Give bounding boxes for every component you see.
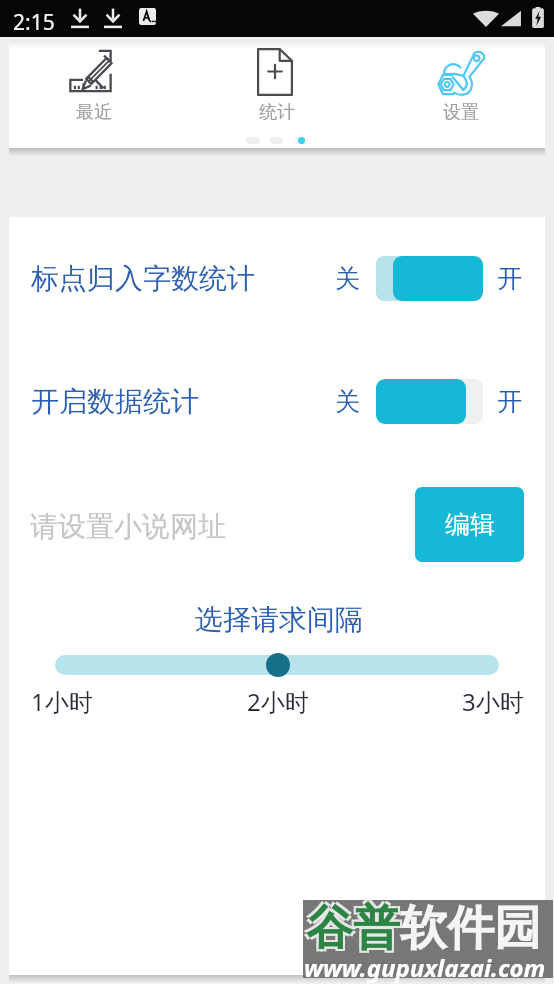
button[interactable]: 最近	[9, 40, 187, 148]
button[interactable]: 统计	[195, 40, 373, 148]
button[interactable]: 编辑	[415, 487, 524, 562]
button[interactable]: 开启数据统计	[9, 374, 545, 428]
staticText: 谷普	[308, 897, 402, 956]
staticText: 开启数据统计	[31, 384, 199, 419]
button[interactable]: On	[376, 256, 483, 301]
staticText: 编辑	[445, 509, 495, 540]
staticText: 开	[497, 386, 522, 417]
staticText: www.gupuxlazai.com	[304, 951, 546, 984]
button[interactable]: 设置	[379, 40, 554, 148]
staticText: 设置	[442, 101, 480, 124]
staticText: 统计	[258, 101, 296, 124]
staticText: 开	[497, 263, 522, 294]
staticText: 2小时	[247, 685, 309, 718]
button[interactable]: Off	[376, 379, 483, 424]
staticText: 标点归入字数统计	[31, 261, 255, 296]
staticText: 谷普	[306, 899, 400, 958]
staticText: 1小时	[31, 685, 93, 718]
staticText: 选择请求间隔	[195, 602, 363, 637]
button[interactable]: 标点归入字数统计	[9, 251, 545, 305]
staticText: 2:15	[13, 8, 55, 37]
staticText: 软件园	[400, 899, 541, 958]
button[interactable]: Interval slider	[266, 653, 290, 677]
staticText: 关	[335, 263, 360, 294]
staticText: 谷普	[304, 897, 398, 956]
staticText: 3小时	[462, 685, 524, 718]
staticText: 请设置小说网址	[30, 509, 226, 544]
staticText: 谷普	[304, 901, 398, 960]
staticText: 关	[335, 386, 360, 417]
staticText: 最近	[75, 101, 113, 124]
staticText: 谷普	[308, 901, 402, 960]
